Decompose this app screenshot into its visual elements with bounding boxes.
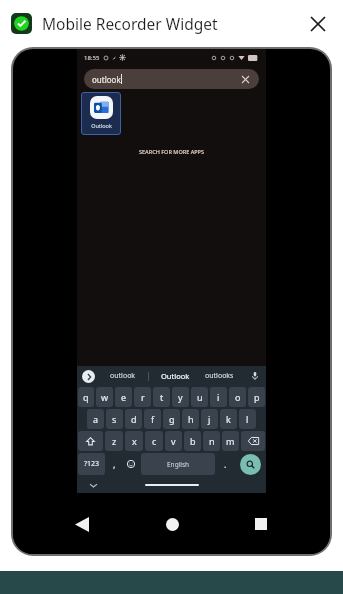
button[interactable]: Search — [240, 454, 261, 475]
staticText: i — [217, 391, 220, 403]
button[interactable]: Recent apps — [241, 504, 281, 544]
button[interactable]: q — [78, 387, 94, 407]
button[interactable]: g — [163, 409, 180, 429]
button[interactable]: y — [172, 387, 189, 407]
button[interactable]: ?123 — [78, 453, 105, 475]
staticText: p — [254, 391, 260, 403]
staticText: g — [169, 413, 175, 425]
staticText: y — [178, 391, 183, 403]
staticText: w — [101, 391, 109, 403]
staticText: k — [226, 413, 231, 425]
staticText: r — [141, 391, 145, 403]
button[interactable]: n — [203, 431, 220, 451]
button[interactable]: i — [210, 387, 227, 407]
button[interactable]: Clear search — [239, 73, 251, 85]
button[interactable]: x — [125, 431, 143, 451]
staticText: b — [190, 435, 196, 447]
button[interactable]: j — [201, 409, 218, 429]
button[interactable]: Home — [152, 504, 192, 544]
staticText: f — [151, 413, 155, 425]
staticText: Mobile Recorder Widget — [42, 13, 218, 34]
staticText: s — [112, 413, 117, 425]
staticText: h — [188, 413, 194, 425]
staticText: x — [132, 435, 137, 447]
staticText: outlook — [92, 74, 121, 85]
button[interactable]: Voice input — [249, 370, 261, 382]
button[interactable]: Back — [62, 504, 102, 544]
button[interactable]: English — [141, 453, 215, 475]
button[interactable]: t — [153, 387, 170, 407]
staticText: 18:55 — [84, 54, 100, 62]
button[interactable]: Period — [217, 453, 233, 475]
staticText: j — [208, 413, 211, 425]
button[interactable]: m — [222, 431, 239, 451]
staticText: Outlook — [91, 122, 112, 129]
staticText: l — [246, 413, 249, 425]
button[interactable]: Backspace — [241, 431, 265, 451]
button[interactable]: k — [220, 409, 237, 429]
other: Shift — [86, 437, 95, 446]
button[interactable]: Comma — [107, 453, 121, 475]
staticText: ?123 — [84, 459, 100, 469]
button[interactable]: z — [105, 431, 123, 451]
button[interactable]: Shift — [78, 431, 103, 451]
staticText: , — [113, 458, 116, 470]
staticText: a — [93, 413, 99, 425]
button[interactable]: d — [125, 409, 142, 429]
button[interactable]: Close — [300, 6, 336, 42]
button[interactable]: l — [239, 409, 256, 429]
button[interactable]: outlook — [84, 69, 259, 89]
staticText: . — [224, 458, 227, 470]
button[interactable]: Emoji — [123, 453, 139, 475]
button[interactable]: Outlook — [81, 92, 121, 135]
button[interactable]: c — [145, 431, 163, 451]
staticText: d — [131, 413, 137, 425]
staticText: q — [83, 391, 89, 403]
staticText: v — [171, 435, 176, 447]
other: Backspace — [248, 437, 259, 445]
button[interactable]: w — [96, 387, 113, 407]
button[interactable]: o — [229, 387, 246, 407]
button[interactable]: r — [134, 387, 151, 407]
staticText: n — [209, 435, 215, 447]
staticText: z — [112, 435, 117, 447]
button[interactable]: outlooks — [205, 371, 234, 381]
button[interactable]: a — [87, 409, 104, 429]
button[interactable]: e — [115, 387, 132, 407]
staticText: e — [121, 391, 127, 403]
button[interactable]: b — [184, 431, 201, 451]
button[interactable]: Hide keyboard — [86, 478, 100, 492]
staticText: t — [160, 391, 164, 403]
button[interactable]: Outlook — [161, 371, 190, 381]
button[interactable]: h — [182, 409, 199, 429]
staticText: u — [197, 391, 203, 403]
button[interactable]: p — [248, 387, 265, 407]
staticText: m — [226, 435, 235, 447]
button[interactable]: v — [165, 431, 182, 451]
button[interactable]: outlook — [110, 371, 136, 381]
button[interactable]: u — [191, 387, 208, 407]
button[interactable]: s — [106, 409, 123, 429]
button[interactable]: Expand suggestions — [82, 370, 95, 383]
staticText: o — [235, 391, 241, 403]
staticText: c — [152, 435, 157, 447]
staticText: English — [167, 460, 190, 469]
button[interactable]: f — [144, 409, 161, 429]
staticText: SEARCH FOR MORE APPS — [77, 148, 266, 155]
